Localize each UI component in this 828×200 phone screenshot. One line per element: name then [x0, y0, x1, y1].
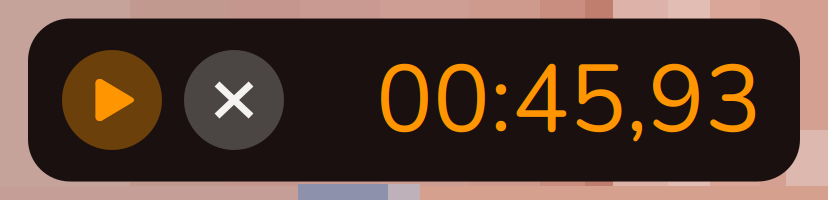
button[interactable]: Cancel	[184, 50, 284, 150]
button[interactable]: Start	[62, 50, 162, 150]
staticText: 00:45,93	[376, 35, 762, 164]
